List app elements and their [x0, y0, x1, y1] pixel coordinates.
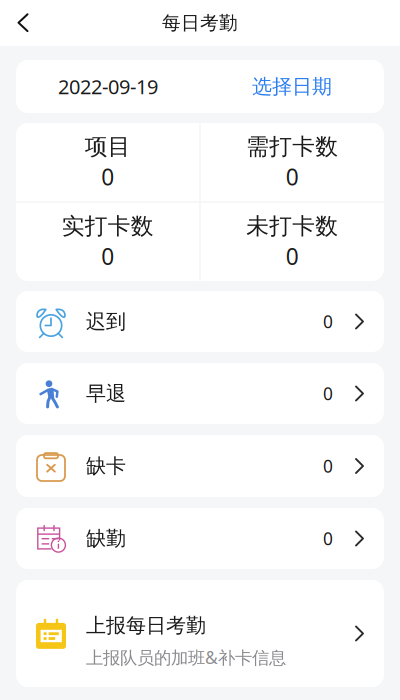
button[interactable]: 2022-09-19: [16, 60, 384, 113]
staticText: 上报队员的加班&补卡信息: [86, 646, 286, 669]
staticText: 0: [101, 162, 114, 192]
staticText: 0: [323, 527, 333, 550]
staticText: 0: [101, 241, 114, 271]
staticText: 早退: [86, 381, 126, 406]
button[interactable]: 缺勤: [16, 508, 384, 569]
staticText: 0: [286, 241, 299, 271]
staticText: 未打卡数: [246, 212, 338, 240]
staticText: 0: [323, 310, 333, 333]
button[interactable]: 上报每日考勤: [16, 580, 384, 687]
staticText: 选择日期: [252, 74, 332, 99]
staticText: 缺卡: [86, 454, 126, 478]
staticText: 迟到: [86, 309, 126, 334]
button[interactable]: 早退: [16, 363, 384, 424]
staticText: 需打卡数: [246, 133, 338, 161]
staticText: 0: [323, 382, 333, 405]
staticText: 项目: [85, 133, 131, 161]
staticText: 0: [323, 454, 333, 477]
button[interactable]: 迟到: [16, 291, 384, 352]
staticText: 上报每日考勤: [86, 613, 206, 638]
staticText: 实打卡数: [62, 212, 154, 240]
staticText: 0: [286, 162, 299, 192]
staticText: 每日考勤: [162, 11, 238, 34]
button[interactable]: Back: [0, 0, 46, 46]
staticText: 缺勤: [86, 526, 126, 551]
button[interactable]: 缺卡: [16, 435, 384, 497]
staticText: 2022-09-19: [58, 73, 158, 100]
